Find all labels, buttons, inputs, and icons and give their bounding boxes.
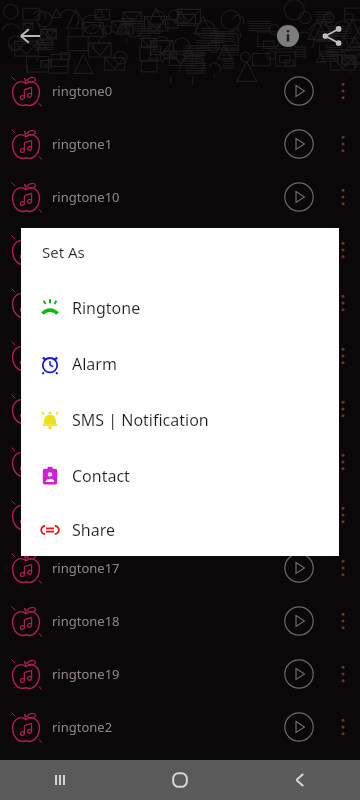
button[interactable]: Play <box>272 594 326 647</box>
button[interactable]: More options <box>326 488 360 541</box>
button[interactable]: ringtone12 <box>0 276 360 329</box>
button[interactable]: SMS | Notification <box>21 392 339 448</box>
staticText: ringtone2 <box>52 718 272 736</box>
staticText: ringtone12 <box>52 294 272 312</box>
staticText: ringtone1 <box>52 135 272 153</box>
button[interactable]: Recents <box>0 760 120 800</box>
button[interactable]: ringtone16 <box>0 488 360 541</box>
button[interactable]: More options <box>326 170 360 223</box>
button[interactable]: More options <box>326 753 360 800</box>
button[interactable]: Play <box>272 700 326 753</box>
button[interactable]: Play <box>272 223 326 276</box>
staticText: ringtone10 <box>52 188 272 206</box>
button[interactable]: Info <box>266 14 310 58</box>
button[interactable]: Play <box>272 170 326 223</box>
staticText: Set As <box>42 242 85 262</box>
button[interactable]: More options <box>326 700 360 753</box>
button[interactable]: Share <box>21 504 339 556</box>
staticText: SMS | Notification <box>72 409 209 431</box>
button[interactable]: Back <box>240 760 360 800</box>
staticText: ringtone19 <box>52 665 272 683</box>
staticText: ringtone17 <box>52 559 272 577</box>
staticText: ringtone20 <box>52 768 272 786</box>
button[interactable]: Contact <box>21 448 339 504</box>
staticText: ringtone18 <box>52 612 272 630</box>
staticText: Contact <box>72 465 130 487</box>
staticText: ringtone13 <box>52 347 272 365</box>
staticText: ringtone11 <box>52 241 272 259</box>
button[interactable]: Play <box>272 753 326 800</box>
button[interactable]: Ringtone <box>21 280 339 336</box>
button[interactable]: More options <box>326 223 360 276</box>
staticText: ringtone14 <box>52 400 272 418</box>
button[interactable]: More options <box>326 276 360 329</box>
button[interactable]: More options <box>326 594 360 647</box>
button[interactable]: ringtone19 <box>0 647 360 700</box>
button[interactable]: More options <box>326 647 360 700</box>
button[interactable]: More options <box>326 64 360 117</box>
button[interactable]: More options <box>326 382 360 435</box>
staticText: Alarm <box>72 353 117 375</box>
staticText: Share <box>72 519 115 541</box>
button[interactable]: Play <box>272 647 326 700</box>
button[interactable]: Home <box>120 760 240 800</box>
button[interactable]: ringtone15 <box>0 435 360 488</box>
button[interactable]: ringtone2 <box>0 700 360 753</box>
button[interactable]: Share <box>310 14 354 58</box>
button[interactable]: ringtone18 <box>0 594 360 647</box>
button[interactable]: ringtone10 <box>0 170 360 223</box>
staticText: ringtone0 <box>52 82 272 100</box>
button[interactable]: ringtone14 <box>0 382 360 435</box>
button[interactable]: ringtone17 <box>0 541 360 594</box>
button[interactable]: ringtone13 <box>0 329 360 382</box>
button[interactable]: More options <box>326 541 360 594</box>
button[interactable]: Alarm <box>21 336 339 392</box>
button[interactable]: ringtone0 <box>0 64 360 117</box>
button[interactable]: Play <box>272 541 326 594</box>
button[interactable]: Play <box>272 64 326 117</box>
button[interactable]: ringtone11 <box>0 223 360 276</box>
staticText: ringtone15 <box>52 453 272 471</box>
button[interactable]: ringtone1 <box>0 117 360 170</box>
button[interactable]: More options <box>326 435 360 488</box>
button[interactable]: More options <box>326 329 360 382</box>
staticText: Ringtone <box>72 297 141 319</box>
button[interactable]: Back <box>6 12 54 60</box>
button[interactable]: More options <box>326 117 360 170</box>
button[interactable]: Play <box>272 117 326 170</box>
button[interactable]: ringtone20 <box>0 753 360 800</box>
